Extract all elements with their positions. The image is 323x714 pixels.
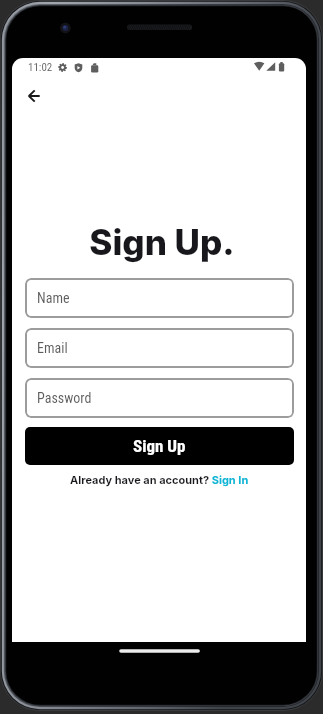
staticText: 11:02 — [28, 61, 53, 74]
staticText: Sign Up — [133, 436, 186, 456]
button[interactable]: Name — [25, 278, 294, 318]
button[interactable]: Sign Up — [25, 427, 294, 465]
staticText: Email — [37, 340, 68, 356]
staticText: Name — [37, 290, 70, 306]
staticText: Sign Up. — [89, 221, 235, 263]
button[interactable]: Email — [25, 328, 294, 368]
button[interactable]: Password — [25, 378, 294, 418]
button[interactable]: Back — [16, 78, 52, 114]
staticText: Password — [37, 390, 92, 406]
button[interactable]: Already have an account? Sign In — [70, 473, 249, 486]
